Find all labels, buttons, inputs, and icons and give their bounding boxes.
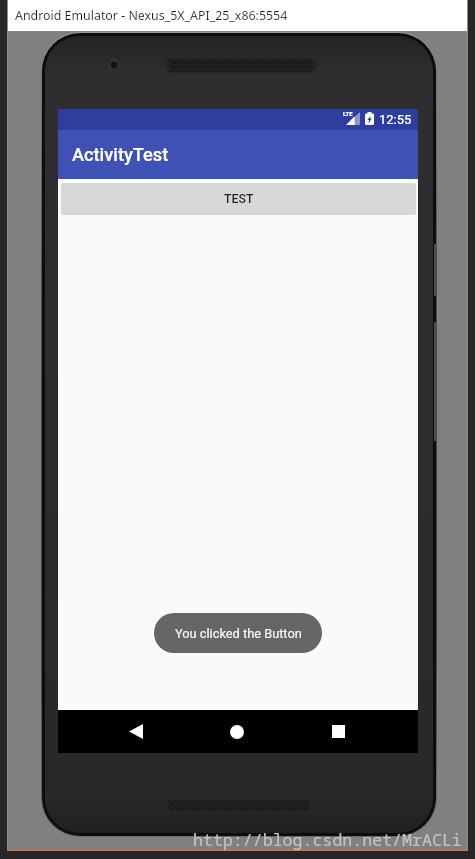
staticText: TEST (224, 192, 254, 206)
staticText: ActivityTest (72, 144, 169, 165)
staticText: You clicked the Button (175, 626, 302, 641)
staticText: http://blog.csdn.net/MrACLi (193, 828, 462, 851)
staticText: Android Emulator - Nexus_5X_API_25_x86:5… (15, 7, 288, 24)
staticText: LTE (343, 110, 353, 117)
button[interactable]: Back (107, 710, 165, 753)
button[interactable]: ActivityTest (58, 130, 418, 179)
button[interactable]: Recent apps (309, 710, 367, 753)
button[interactable]: Home (208, 710, 266, 753)
staticText: 12:55 (379, 112, 412, 127)
button[interactable]: TEST (61, 183, 416, 215)
